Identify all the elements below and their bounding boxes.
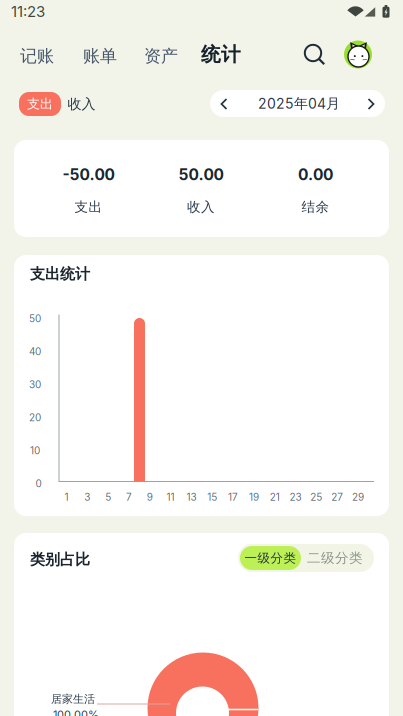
staticText: 收入 [67, 95, 95, 113]
button[interactable]: 一级分类 [240, 546, 301, 570]
staticText: 居家生活 [51, 692, 95, 706]
staticText: 7 [126, 491, 132, 503]
staticText: 25 [310, 491, 322, 503]
staticText: 3 [84, 491, 90, 503]
staticText: 11 [167, 491, 175, 503]
button[interactable]: 我的 [343, 39, 373, 69]
staticText: 二级分类 [307, 549, 363, 566]
staticText: 50.00 [178, 165, 223, 184]
staticText: -50.00 [62, 165, 114, 184]
staticText: 21 [270, 491, 280, 503]
button[interactable]: 2025年04月 [258, 95, 340, 112]
button[interactable]: 二级分类 [307, 549, 363, 566]
staticText: 类别占比 [30, 550, 90, 569]
staticText: 0.00 [298, 165, 333, 184]
button[interactable]: 上个月 [217, 95, 235, 113]
staticText: 资产 [144, 45, 178, 67]
button[interactable]: 收入 [67, 95, 95, 113]
staticText: 10 [30, 444, 40, 457]
staticText: 1 [64, 491, 68, 503]
button[interactable]: 账单 [83, 45, 117, 67]
staticText: 23 [289, 491, 301, 503]
staticText: 100.00% [53, 708, 99, 716]
button[interactable]: 记账 [20, 45, 54, 67]
staticText: 账单 [83, 45, 117, 67]
button[interactable]: 统计 [201, 42, 241, 67]
staticText: 记账 [20, 45, 54, 67]
button[interactable]: 资产 [144, 45, 178, 67]
staticText: 40 [29, 345, 41, 358]
staticText: 收入 [187, 198, 215, 215]
staticText: 20 [29, 411, 41, 424]
staticText: 13 [186, 491, 196, 503]
button[interactable]: 搜索 [302, 42, 328, 68]
staticText: 9 [147, 491, 153, 503]
staticText: 统计 [201, 42, 241, 67]
staticText: 17 [228, 491, 238, 503]
staticText: 19 [249, 491, 259, 503]
staticText: 支出统计 [30, 265, 90, 283]
staticText: 30 [29, 378, 41, 391]
button[interactable]: 下个月 [360, 95, 378, 113]
staticText: 支出 [27, 96, 53, 112]
staticText: 50 [29, 312, 41, 325]
staticText: 2025年04月 [258, 95, 340, 112]
staticText: 一级分类 [244, 550, 296, 566]
staticText: 15 [207, 491, 217, 503]
staticText: 27 [331, 491, 343, 503]
button[interactable]: 支出 [19, 92, 61, 116]
staticText: 结余 [301, 198, 329, 215]
staticText: 0 [35, 477, 41, 490]
staticText: 5 [105, 491, 111, 503]
staticText: 支出 [74, 198, 102, 215]
staticText: 11:23 [11, 2, 45, 20]
staticText: 29 [352, 491, 364, 503]
